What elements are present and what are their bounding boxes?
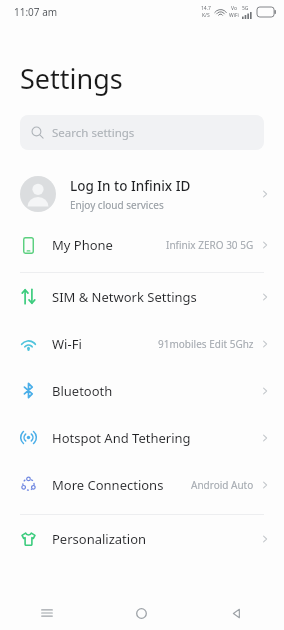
- button[interactable]: Hotspot And Tethering: [0, 414, 284, 461]
- staticText: Android Auto: [191, 478, 254, 492]
- button[interactable]: Bluetooth: [0, 367, 284, 414]
- staticText: Bluetooth: [52, 382, 260, 400]
- staticText: Vo: [231, 5, 237, 12]
- button[interactable]: Wi-Fi: [0, 320, 284, 367]
- staticText: WiFi: [229, 12, 239, 19]
- button[interactable]: More Connections: [0, 461, 284, 508]
- staticText: Hotspot And Tethering: [52, 429, 260, 447]
- staticText: K/S: [202, 12, 210, 19]
- staticText: Personalization: [52, 530, 260, 548]
- staticText: Wi-Fi: [52, 335, 158, 353]
- staticText: Log In to Infinix ID: [70, 177, 191, 195]
- staticText: Search settings: [52, 125, 135, 141]
- button[interactable]: Home: [94, 596, 189, 630]
- button[interactable]: Recents: [0, 596, 94, 630]
- staticText: Infinix ZERO 30 5G: [166, 238, 254, 252]
- staticText: 5G: [242, 5, 249, 12]
- staticText: 11:07 am: [14, 5, 58, 19]
- staticText: More Connections: [52, 476, 191, 494]
- button[interactable]: Personalization: [0, 515, 284, 562]
- staticText: Enjoy cloud services: [70, 198, 164, 212]
- button[interactable]: My Phone: [0, 222, 284, 268]
- staticText: 91mobiles Edit 5Ghz: [158, 337, 254, 351]
- button[interactable]: Back: [189, 596, 284, 630]
- button[interactable]: SIM & Network Settings: [0, 273, 284, 320]
- staticText: 14.7: [201, 5, 211, 12]
- staticText: Settings: [20, 60, 123, 97]
- button[interactable]: Search settings: [20, 115, 264, 150]
- button[interactable]: Log In to Infinix ID: [0, 166, 284, 222]
- staticText: SIM & Network Settings: [52, 288, 260, 306]
- staticText: My Phone: [52, 236, 166, 254]
